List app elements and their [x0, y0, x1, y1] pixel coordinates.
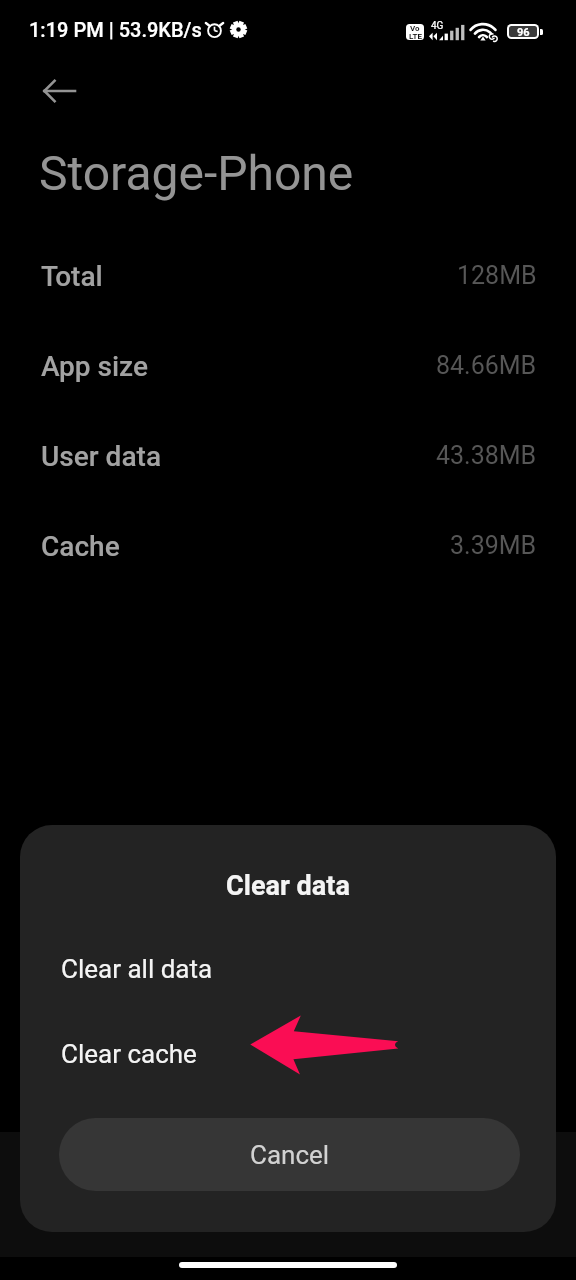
- staticText: Clear data: [20, 870, 556, 902]
- staticText: Storage-Phone: [39, 145, 354, 201]
- staticText: App size: [41, 350, 149, 383]
- button[interactable]: Clear cache: [20, 1016, 556, 1092]
- staticText: 1:19 PM | 53.9KB/s: [29, 18, 202, 41]
- button[interactable]: Total: [0, 231, 576, 321]
- staticText: 96: [517, 26, 530, 37]
- button[interactable]: Back: [30, 61, 90, 121]
- staticText: User data: [41, 440, 162, 473]
- button[interactable]: App size: [0, 321, 576, 411]
- staticText: Clear cache: [61, 1039, 197, 1069]
- staticText: Cancel: [250, 1140, 330, 1170]
- staticText: LTE: [409, 32, 422, 40]
- staticText: Clear all data: [61, 954, 213, 984]
- button[interactable]: Clear all data: [20, 931, 556, 1007]
- staticText: Vo: [410, 24, 420, 33]
- button[interactable]: Cache: [0, 501, 576, 591]
- staticText: 128MB: [457, 261, 537, 290]
- staticText: Total: [41, 260, 103, 293]
- button[interactable]: Cancel: [59, 1118, 520, 1191]
- staticText: 3.39MB: [450, 531, 537, 560]
- button[interactable]: User data: [0, 411, 576, 501]
- staticText: 4G: [431, 20, 444, 32]
- staticText: 84.66MB: [436, 351, 537, 380]
- staticText: 43.38MB: [436, 441, 537, 470]
- staticText: Cache: [41, 530, 120, 563]
